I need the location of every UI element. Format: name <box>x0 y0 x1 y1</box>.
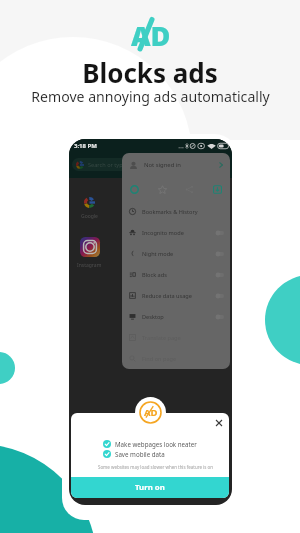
staticText: Some websites may load slower when this … <box>98 464 213 470</box>
button[interactable]: Incognito mode <box>129 222 224 243</box>
staticText: Night mode <box>142 250 174 258</box>
button[interactable]: Turn on <box>71 477 229 498</box>
button[interactable]: Bookmark <box>158 185 167 194</box>
button[interactable]: Desktop <box>215 313 224 320</box>
staticText: Blocks ads <box>82 55 218 90</box>
staticText: Block ads <box>142 271 167 279</box>
staticText: AD <box>131 17 171 54</box>
button[interactable]: Night mode <box>215 250 224 257</box>
button[interactable]: Block ads <box>215 271 224 278</box>
staticText: AD <box>144 406 158 419</box>
staticText: Instagram <box>77 262 102 269</box>
staticText: Make webpages look neater <box>115 440 197 448</box>
button[interactable]: Close <box>212 416 226 430</box>
button[interactable]: Not signed in <box>129 153 224 177</box>
button[interactable]: Downloads <box>213 185 222 194</box>
staticText: Desktop <box>142 313 164 321</box>
staticText: Remove annoying ads automatically <box>31 87 270 106</box>
staticText: Incognito mode <box>142 229 184 237</box>
button[interactable]: Desktop <box>129 306 224 327</box>
staticText: Save mobile data <box>115 450 165 458</box>
button[interactable]: Refresh <box>130 185 139 194</box>
staticText: Turn on <box>135 482 165 493</box>
button[interactable]: Night mode <box>129 243 224 264</box>
staticText: Bookmarks & History <box>142 208 198 216</box>
button[interactable]: Search or type web address <box>72 158 229 171</box>
button[interactable]: Block ads <box>129 264 224 285</box>
staticText: Reduce data usage <box>142 292 192 300</box>
staticText: Search or type web address <box>88 161 161 169</box>
staticText: Google <box>81 213 98 220</box>
staticText: 3:18 PM <box>74 142 97 150</box>
button[interactable]: Bookmarks & History <box>129 201 224 222</box>
button[interactable]: Incognito mode <box>215 229 224 236</box>
staticText: Not signed in <box>144 161 181 169</box>
button[interactable]: Reduce data usage <box>129 285 224 306</box>
button[interactable]: Reduce data usage <box>215 292 224 299</box>
